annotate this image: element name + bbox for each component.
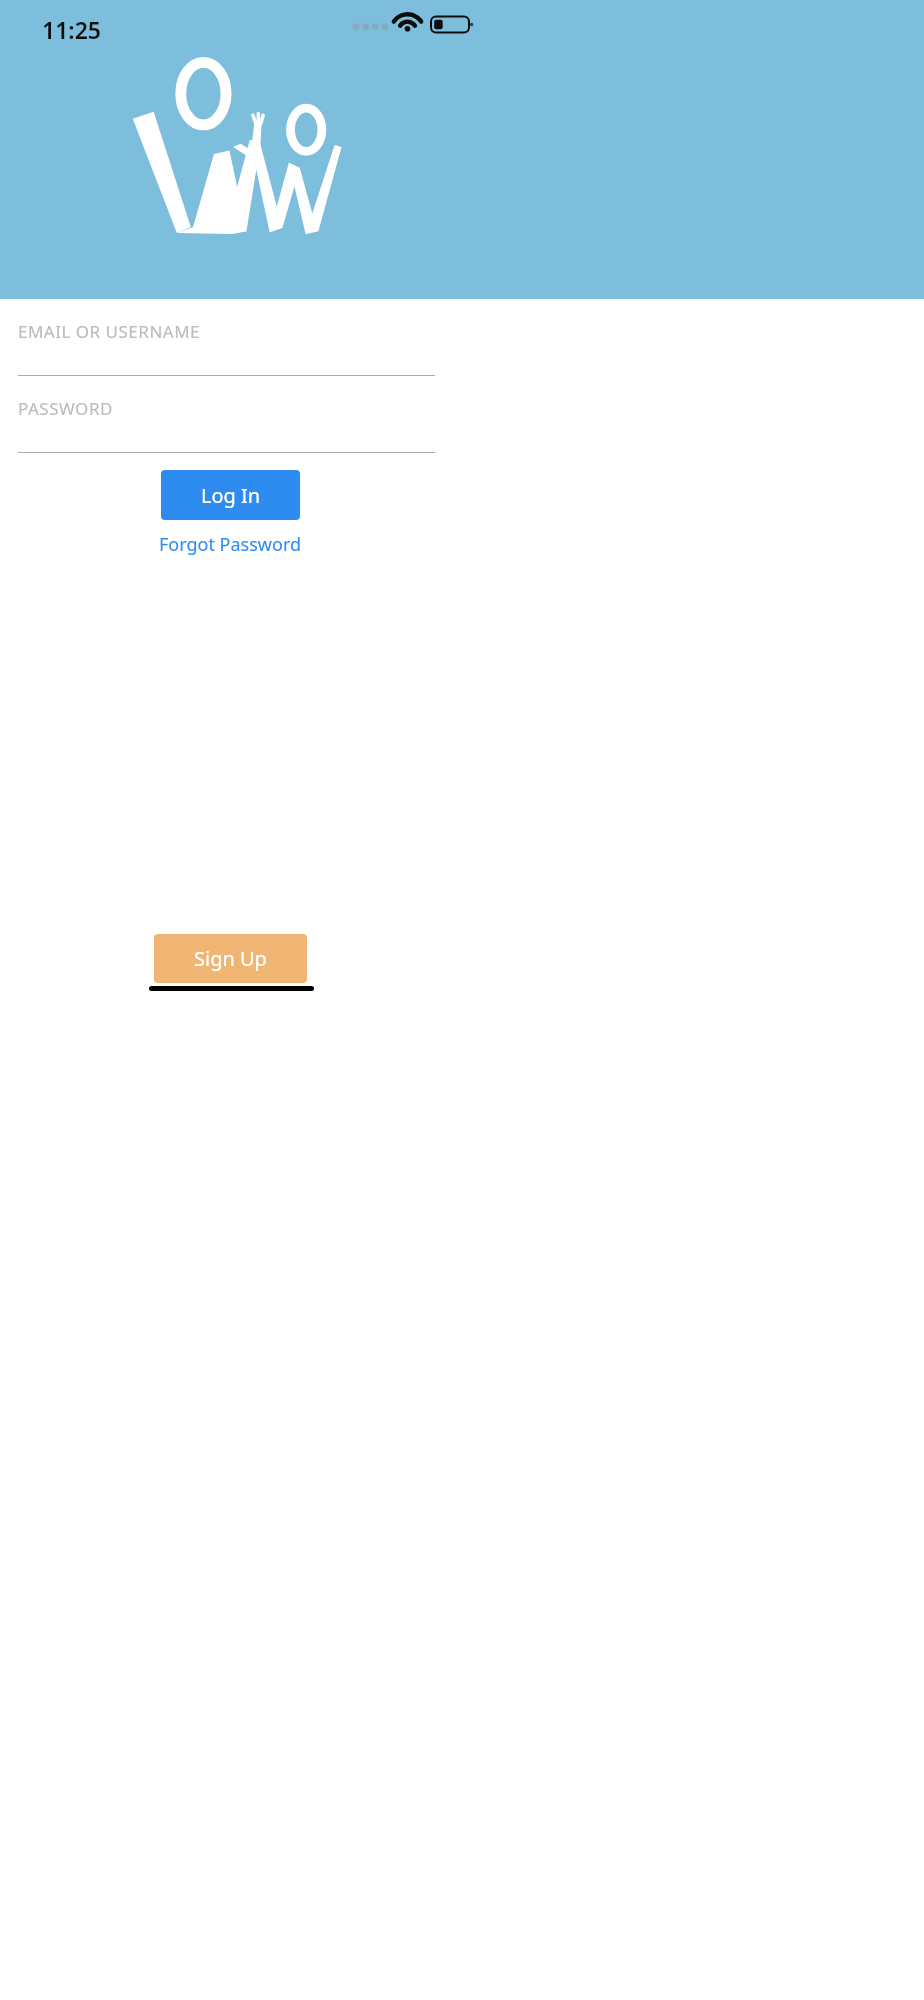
staticText: Sign Up [194,945,267,972]
button[interactable]: Forgot Password [150,529,311,559]
staticText: 11:25 [42,14,101,45]
button[interactable]: PASSWORD [0,376,924,453]
button[interactable]: EMAIL OR USERNAME [0,299,924,376]
staticText: Log In [201,482,261,509]
staticText: PASSWORD [18,397,113,420]
other: WW logo [120,58,352,234]
staticText: Forgot Password [159,532,302,557]
button[interactable]: Log In [161,470,300,520]
button[interactable]: Sign Up [154,934,307,983]
staticText: EMAIL OR USERNAME [18,320,201,343]
